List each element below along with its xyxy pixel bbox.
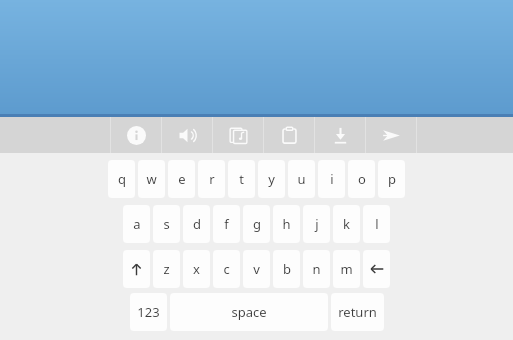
staticText: g (253, 215, 261, 233)
button[interactable]: h (273, 205, 300, 243)
staticText: m (340, 260, 353, 278)
staticText: n (312, 260, 321, 278)
button[interactable]: y (258, 160, 285, 198)
staticText: l (375, 215, 379, 233)
button[interactable]: v (243, 250, 270, 288)
staticText: e (178, 170, 186, 188)
staticText: j (315, 215, 319, 233)
button[interactable]: q (108, 160, 135, 198)
button[interactable]: n (303, 250, 330, 288)
staticText: x (193, 260, 200, 278)
button[interactable]: return (331, 293, 384, 331)
staticText: f (224, 215, 229, 233)
staticText: y (268, 170, 275, 188)
button[interactable]: o (348, 160, 375, 198)
button[interactable]: j (303, 205, 330, 243)
staticText: k (343, 215, 350, 233)
button[interactable]: d (183, 205, 210, 243)
button[interactable]: r (198, 160, 225, 198)
button[interactable] (363, 250, 390, 288)
button[interactable]: Download (315, 117, 365, 153)
button[interactable]: l (363, 205, 390, 243)
button[interactable]: Info (111, 117, 161, 153)
button[interactable]: b (273, 250, 300, 288)
button[interactable]: t (228, 160, 255, 198)
button[interactable]: Clipboard (264, 117, 314, 153)
staticText: 123 (137, 303, 160, 321)
button[interactable]: w (138, 160, 165, 198)
button[interactable]: space (170, 293, 328, 331)
button[interactable]: Sound (162, 117, 212, 153)
staticText: d (193, 215, 201, 233)
staticText: return (338, 303, 377, 321)
button[interactable]: Send (366, 117, 416, 153)
staticText: a (133, 215, 141, 233)
staticText: b (283, 260, 291, 278)
button[interactable]: g (243, 205, 270, 243)
button[interactable]: c (213, 250, 240, 288)
staticText: w (146, 170, 157, 188)
button[interactable]: e (168, 160, 195, 198)
staticText: z (163, 260, 170, 278)
button[interactable]: a (123, 205, 150, 243)
button[interactable]: 123 (130, 293, 167, 331)
button[interactable]: f (213, 205, 240, 243)
button[interactable]: s (153, 205, 180, 243)
staticText: t (239, 170, 244, 188)
staticText: q (118, 170, 126, 188)
staticText: c (223, 260, 230, 278)
staticText: u (297, 170, 306, 188)
button[interactable]: u (288, 160, 315, 198)
button[interactable]: x (183, 250, 210, 288)
staticText: space (231, 303, 267, 321)
staticText: r (209, 170, 215, 188)
staticText: s (163, 215, 170, 233)
staticText: i (330, 170, 334, 188)
button[interactable]: Media library (213, 117, 263, 153)
button[interactable] (123, 250, 150, 288)
staticText: v (253, 260, 260, 278)
staticText: p (388, 170, 396, 188)
staticText: h (282, 215, 291, 233)
button[interactable]: z (153, 250, 180, 288)
button[interactable]: m (333, 250, 360, 288)
staticText: o (358, 170, 366, 188)
button[interactable]: p (378, 160, 405, 198)
button[interactable]: k (333, 205, 360, 243)
button[interactable]: i (318, 160, 345, 198)
